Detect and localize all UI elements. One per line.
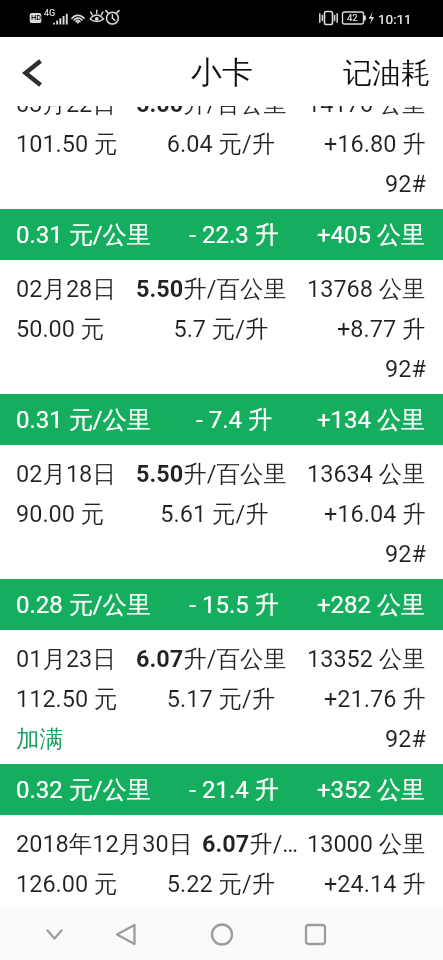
staticText: 01月23日 [16, 644, 116, 674]
staticText: 92# [385, 355, 426, 383]
button[interactable]: 记油耗 [333, 53, 443, 90]
button[interactable]: Home [221, 907, 332, 960]
staticText: 5.00升/百公里 [116, 106, 307, 119]
staticText: +134 公里 [317, 405, 426, 435]
staticText: 5.22 元/升 [118, 869, 324, 899]
staticText: 50.00 元 [16, 314, 105, 344]
staticText: 小卡 [191, 53, 253, 92]
staticText: +16.04 升 [324, 499, 426, 529]
staticText: 6.07升/百公里 [116, 644, 307, 674]
staticText: 加满 [16, 724, 63, 754]
staticText: 0.31 元/公里 [16, 220, 151, 250]
staticText: +282 公里 [317, 590, 426, 620]
staticText: - 15.5 升 [151, 590, 317, 620]
staticText: 5.17 元/升 [118, 684, 324, 714]
button[interactable]: Back [110, 907, 221, 960]
button[interactable]: 02月28日 [0, 260, 443, 394]
staticText: +24.14 升 [324, 869, 426, 899]
staticText: 92# [385, 170, 426, 198]
button[interactable]: 2018年12月30日 [0, 815, 443, 907]
staticText: - 7.4 升 [151, 405, 317, 435]
staticText: - 21.4 升 [151, 775, 317, 805]
staticText: 5.61 元/升 [105, 499, 324, 529]
button[interactable]: 0.31 元/公里 [0, 394, 443, 445]
staticText: 记油耗 [343, 55, 430, 92]
staticText: 4G [44, 8, 56, 19]
staticText: 101.50 元 [16, 129, 118, 159]
staticText: 126.00 元 [16, 869, 118, 899]
staticText: +21.76 升 [324, 684, 426, 714]
staticText: 13352 公里 [307, 644, 426, 674]
staticText: 10:11 [378, 11, 412, 27]
button[interactable]: 02月18日 [0, 445, 443, 579]
staticText: 03月22日 [16, 106, 116, 119]
staticText: 2018年12月30日 [16, 829, 193, 859]
staticText: +405 公里 [317, 220, 426, 250]
staticText: 13634 公里 [307, 459, 426, 489]
staticText: +352 公里 [317, 775, 426, 805]
button[interactable]: Back [0, 40, 64, 104]
staticText: 5.50升/百公里 [116, 459, 307, 489]
button[interactable]: 03月22日 [0, 106, 443, 209]
staticText: 13000 公里 [307, 829, 426, 859]
staticText: 42 [347, 12, 358, 23]
staticText: 6.07升/百公里 [193, 829, 307, 859]
staticText: HD [31, 13, 42, 22]
staticText: - 22.3 升 [151, 220, 317, 250]
staticText: 02月28日 [16, 274, 116, 304]
staticText: +8.77 升 [337, 314, 426, 344]
staticText: 5.7 元/升 [105, 314, 337, 344]
staticText: 02月18日 [16, 459, 116, 489]
staticText: 5.50升/百公里 [116, 274, 307, 304]
staticText: +16.80 升 [324, 129, 426, 159]
staticText: 6.04 元/升 [118, 129, 324, 159]
button[interactable]: 0.31 元/公里 [0, 209, 443, 260]
staticText: 14176 公里 [307, 106, 426, 119]
staticText: 13768 公里 [307, 274, 426, 304]
staticText: 92# [385, 725, 426, 753]
staticText: 0.31 元/公里 [16, 405, 151, 435]
staticText: 112.50 元 [16, 684, 118, 714]
button[interactable]: 0.28 元/公里 [0, 579, 443, 630]
staticText: 92# [385, 540, 426, 568]
staticText: 0.32 元/公里 [16, 775, 151, 805]
staticText: 90.00 元 [16, 499, 105, 529]
button[interactable]: 0.32 元/公里 [0, 764, 443, 815]
button[interactable]: Hide navigation bar [0, 907, 110, 960]
staticText: 0.28 元/公里 [16, 590, 151, 620]
button[interactable]: 01月23日 [0, 630, 443, 764]
